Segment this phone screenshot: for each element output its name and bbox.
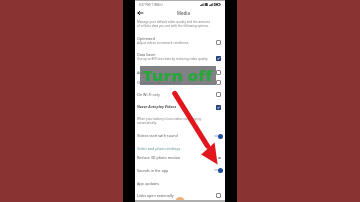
button[interactable]: Never Autoplay Videos xyxy=(215,104,221,110)
button[interactable]: Data Saver xyxy=(215,55,221,61)
button[interactable]: Videos start with sound xyxy=(212,133,223,139)
staticText: Turn off xyxy=(143,67,213,84)
button[interactable]: Reduce 3D photo motion xyxy=(212,155,223,161)
button[interactable]: Links open externally xyxy=(215,192,221,198)
staticText: Videos start with sound xyxy=(137,133,178,138)
staticText: When your battery is low videos stop pla… xyxy=(137,117,215,125)
staticText: Adjust videos to network conditions. xyxy=(137,41,189,45)
staticText: Video and photo settings xyxy=(137,146,181,151)
staticText: Manage your default video quality and th… xyxy=(137,20,212,28)
staticText: Reduce 3D photo motion xyxy=(137,155,181,160)
staticText: Use up to 80% less data by reducing vide… xyxy=(137,57,209,61)
staticText: Media xyxy=(177,10,190,16)
button[interactable]: Auto xyxy=(215,69,221,75)
staticText: Sounds in the app xyxy=(137,168,169,173)
staticText: On mobile data and Wi-Fi xyxy=(137,80,181,85)
staticText: Data Saver xyxy=(137,52,156,57)
button[interactable]: Back xyxy=(136,8,145,17)
staticText: Links open externally xyxy=(137,193,174,198)
staticText: On Wi-Fi only xyxy=(137,92,160,97)
button[interactable]: Optimized xyxy=(215,39,221,45)
staticText: App updates xyxy=(137,181,159,186)
button[interactable]: Sounds in the app xyxy=(212,167,223,173)
staticText: 8:27 PM (1.9KB/s) xyxy=(139,3,163,7)
button[interactable]: On mobile data and Wi-Fi xyxy=(215,79,221,85)
staticText: Optimized xyxy=(137,36,155,41)
staticText: Never Autoplay Videos xyxy=(137,104,177,109)
staticText: Auto xyxy=(137,70,146,75)
button[interactable]: On Wi-Fi only xyxy=(215,91,221,97)
